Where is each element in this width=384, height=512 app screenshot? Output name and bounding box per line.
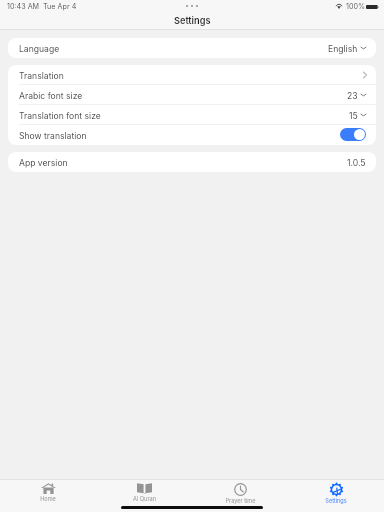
staticText: Translation font size — [19, 111, 101, 121]
button[interactable]: Show translation — [340, 128, 366, 141]
button[interactable]: Settings — [288, 480, 384, 505]
button[interactable]: Language — [8, 38, 376, 58]
button[interactable]: Home — [0, 480, 96, 503]
other: Battery — [366, 5, 379, 9]
staticText: 23 — [347, 91, 358, 101]
button[interactable]: App version — [8, 152, 376, 172]
staticText: Tue Apr 4 — [43, 2, 77, 11]
button[interactable]: Translation font size — [8, 105, 376, 125]
button[interactable]: Translation — [8, 65, 376, 85]
staticText: 15 — [349, 111, 358, 121]
button[interactable]: Prayer time — [192, 480, 288, 505]
staticText: Translation — [19, 71, 64, 81]
staticText: 10:43 AM — [7, 2, 40, 11]
staticText: 1.0.5 — [347, 158, 366, 168]
staticText: Al Quran — [133, 496, 156, 503]
staticText: 100% — [346, 2, 366, 11]
other: Open translation — [362, 70, 368, 80]
staticText: Home — [40, 496, 56, 503]
button[interactable]: Al Quran — [96, 480, 192, 503]
staticText: Arabic font size — [19, 91, 83, 101]
staticText: Prayer time — [225, 498, 256, 505]
button[interactable]: Show translation — [8, 125, 376, 145]
other: Wi-Fi — [336, 4, 342, 9]
staticText: English — [328, 44, 358, 54]
button[interactable]: Arabic font size — [8, 85, 376, 105]
staticText: Show translation — [19, 131, 87, 141]
staticText: Language — [19, 44, 60, 54]
staticText: Settings — [174, 15, 211, 26]
staticText: App version — [19, 158, 68, 168]
staticText: Settings — [325, 498, 347, 505]
